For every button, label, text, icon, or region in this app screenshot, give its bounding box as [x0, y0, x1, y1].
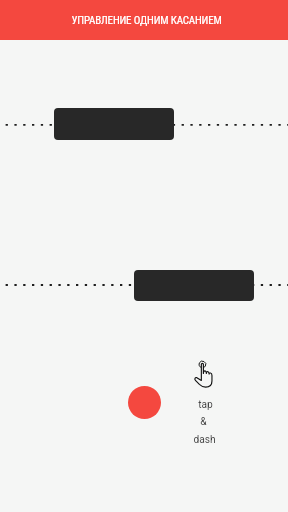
other: Tap [194, 361, 214, 388]
staticText: dash [193, 434, 216, 446]
staticText: tap [198, 399, 213, 411]
staticText: & [200, 416, 207, 428]
button[interactable] [134, 270, 254, 301]
staticText: УПРАВЛЕНИЕ ОДНИМ КАСАНИЕМ [71, 14, 222, 27]
button[interactable] [54, 108, 174, 140]
